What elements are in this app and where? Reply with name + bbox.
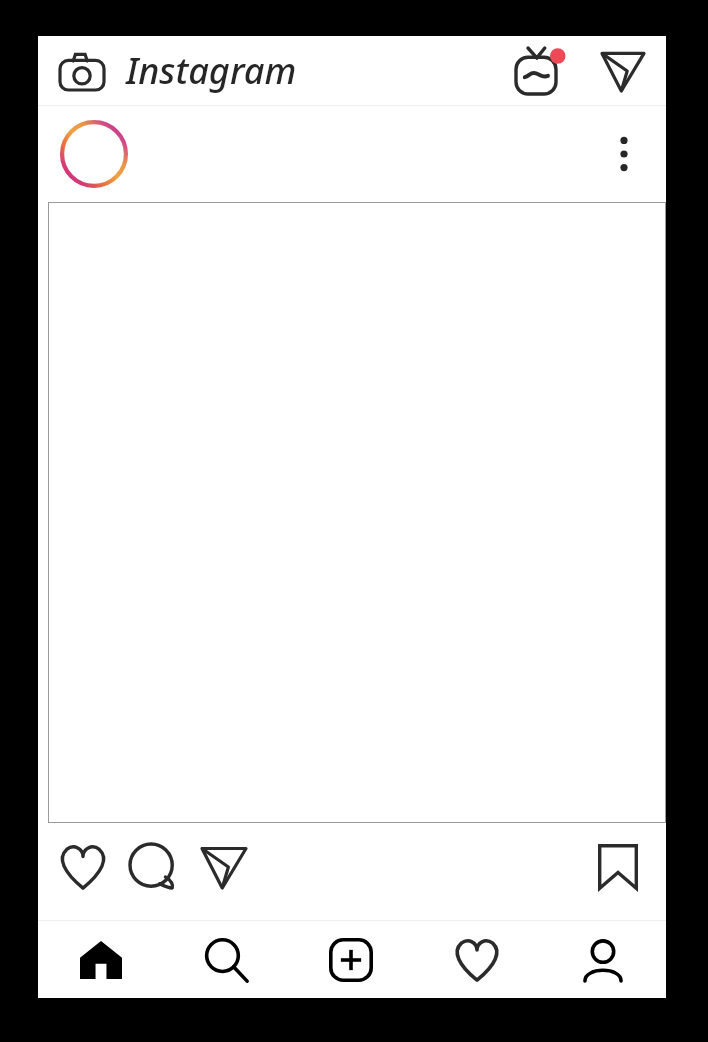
staticText: Instagram (126, 46, 297, 95)
button[interactable]: Camera (60, 52, 104, 90)
button[interactable]: New post (288, 921, 414, 998)
button[interactable]: Post photo (48, 202, 666, 823)
button[interactable]: Home (38, 921, 163, 998)
button[interactable]: More options (604, 128, 644, 180)
button[interactable]: Direct messages (602, 51, 644, 91)
button[interactable]: Search (163, 921, 288, 998)
button[interactable]: Share (202, 846, 246, 888)
button[interactable]: Save (598, 844, 638, 890)
button[interactable]: Instagram (126, 42, 297, 98)
button[interactable]: Like (59, 845, 107, 889)
button[interactable]: Comment (130, 844, 178, 892)
button[interactable]: Your story (60, 120, 128, 188)
button[interactable]: Profile (540, 921, 666, 998)
button[interactable]: Activity (414, 921, 540, 998)
button[interactable]: IGTV (516, 48, 566, 94)
